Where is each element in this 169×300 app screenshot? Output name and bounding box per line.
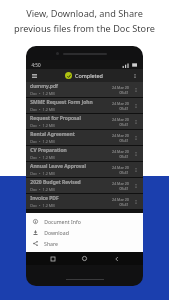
button[interactable]: CV Preparation <box>26 146 143 161</box>
staticText: 24 Mar 20 <box>112 181 129 186</box>
staticText: Invoice PDF <box>30 195 59 202</box>
button[interactable]: Annual Leave Approval <box>26 162 143 177</box>
staticText: 05:41 <box>119 186 129 191</box>
button[interactable]: File options <box>132 86 139 93</box>
button[interactable]: File options <box>132 102 139 109</box>
button[interactable]: Back <box>111 253 122 264</box>
button[interactable]: File options <box>132 198 139 205</box>
button[interactable]: Download <box>26 227 143 238</box>
button[interactable]: File options <box>132 166 139 173</box>
button[interactable]: Share <box>26 238 143 249</box>
staticText: Completed <box>75 72 103 79</box>
staticText: Rental Agreement <box>30 131 75 138</box>
staticText: 24 Mar 20 <box>112 197 129 202</box>
staticText: 24 Mar 20 <box>112 101 129 106</box>
staticText: dummy.pdf <box>30 83 58 90</box>
staticText: 05:41 <box>119 170 129 175</box>
button[interactable]: File options <box>132 118 139 125</box>
button[interactable]: Open navigation menu <box>26 69 143 82</box>
staticText: CV Preparation <box>30 147 67 154</box>
button[interactable]: dummy.pdf <box>26 82 143 97</box>
staticText: 05:41 <box>119 202 129 207</box>
staticText: 05:41 <box>119 122 129 127</box>
staticText: SMME Request Form John <box>30 99 93 106</box>
staticText: Share <box>44 240 58 247</box>
button[interactable]: Open navigation menu <box>31 72 38 79</box>
staticText: 24 Mar 20 <box>112 133 129 138</box>
staticText: Document Info <box>44 218 81 225</box>
staticText: 2020 Budget Revised <box>30 179 81 186</box>
staticText: 05:41 <box>119 138 129 143</box>
staticText: Doc • 1.2 MB <box>30 107 55 112</box>
staticText: Request for Proposal <box>30 115 81 122</box>
button[interactable]: File options <box>132 150 139 157</box>
button[interactable]: Document Info <box>26 216 143 227</box>
staticText: 24 Mar 20 <box>112 85 129 90</box>
button[interactable]: File options <box>132 182 139 189</box>
staticText: 05:41 <box>119 154 129 159</box>
button[interactable]: Home <box>79 253 90 264</box>
button[interactable]: Invoice PDF <box>26 194 143 209</box>
staticText: Annual Leave Approval <box>30 163 86 170</box>
button[interactable]: Rental Agreement <box>26 130 143 145</box>
staticText: 05:41 <box>119 90 129 95</box>
button[interactable]: Request for Proposal <box>26 114 143 129</box>
staticText: Doc • 1.2 MB <box>30 139 55 144</box>
staticText: Doc • 1.2 MB <box>30 91 55 96</box>
staticText: Download <box>44 229 69 236</box>
staticText: 24 Mar 20 <box>112 149 129 154</box>
staticText: 24 Mar 20 <box>112 117 129 122</box>
staticText: previous files from the Doc Store <box>14 22 155 35</box>
button[interactable]: File options <box>132 134 139 141</box>
button[interactable]: More options <box>131 72 138 79</box>
staticText: Doc • 1.2 MB <box>30 187 55 192</box>
button[interactable]: Recent apps <box>47 253 58 264</box>
button[interactable]: 2020 Budget Revised <box>26 178 143 193</box>
staticText: 05:41 <box>119 106 129 111</box>
button[interactable]: SMME Request Form John <box>26 98 143 113</box>
staticText: 24 Mar 20 <box>112 165 129 170</box>
staticText: Doc • 1.2 MB <box>30 171 55 176</box>
staticText: 4:50 <box>31 62 41 68</box>
staticText: View, Download, and Share <box>26 7 143 20</box>
staticText: Doc • 1.2 MB <box>30 155 55 160</box>
staticText: Doc • 1.2 MB <box>30 203 55 208</box>
staticText: Doc • 1.2 MB <box>30 123 55 128</box>
